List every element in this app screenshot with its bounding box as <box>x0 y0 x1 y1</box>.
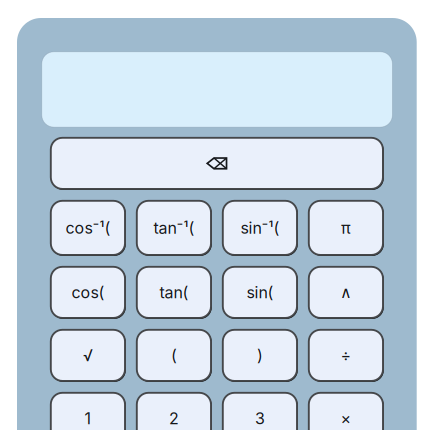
staticText: ÷ <box>340 346 351 365</box>
button[interactable]: ( <box>137 330 211 381</box>
button[interactable]: 2 <box>137 393 211 430</box>
staticText: √ <box>83 346 93 365</box>
staticText: 2 <box>169 409 179 428</box>
button[interactable]: ∧ <box>309 267 383 318</box>
staticText: π <box>341 218 351 238</box>
button[interactable]: tan⁻¹( <box>137 201 211 255</box>
button[interactable]: cos( <box>51 267 125 318</box>
button[interactable]: ÷ <box>309 330 383 381</box>
staticText: tan( <box>159 283 188 302</box>
staticText: cos⁻¹( <box>65 218 110 238</box>
staticText: sin⁻¹( <box>240 218 279 238</box>
staticText: ∧ <box>340 283 352 302</box>
button[interactable]: 1 <box>51 393 125 430</box>
button[interactable]: 3 <box>223 393 297 430</box>
staticText: 3 <box>255 409 265 428</box>
button[interactable]: tan( <box>137 267 211 318</box>
staticText: sin( <box>246 283 273 302</box>
button[interactable]: ) <box>223 330 297 381</box>
button[interactable]: × <box>309 393 383 430</box>
button[interactable]: √ <box>51 330 125 381</box>
button[interactable]: π <box>309 201 383 255</box>
staticText: × <box>340 409 351 428</box>
staticText: cos( <box>71 283 104 302</box>
staticText: ) <box>257 346 263 365</box>
button[interactable]: Backspace <box>51 138 383 189</box>
button[interactable]: cos⁻¹( <box>51 201 125 255</box>
staticText: ( <box>171 346 177 365</box>
button[interactable]: sin⁻¹( <box>223 201 297 255</box>
button[interactable]: sin( <box>223 267 297 318</box>
staticText: tan⁻¹( <box>153 218 194 238</box>
staticText: 1 <box>84 409 91 428</box>
